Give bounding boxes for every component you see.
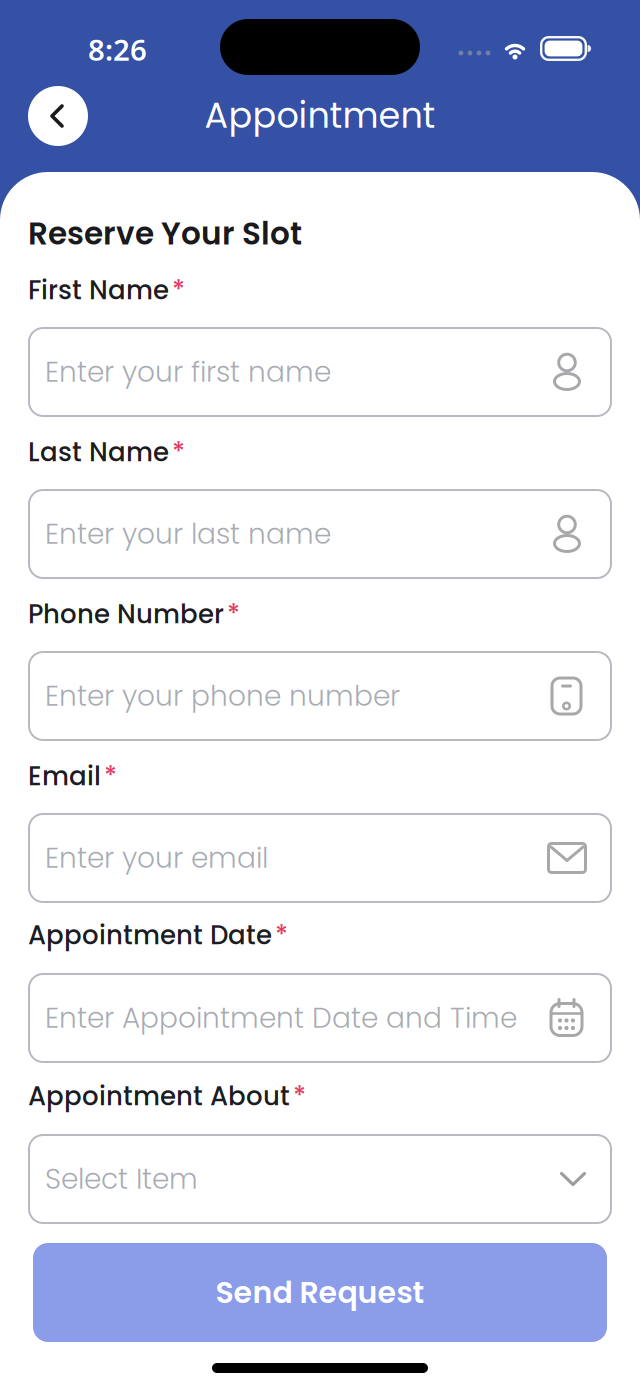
staticText: Appointment Date bbox=[28, 917, 272, 953]
button[interactable]: Enter your last name bbox=[28, 489, 612, 579]
button[interactable]: Back bbox=[28, 86, 88, 146]
button[interactable]: Enter Appointment Date and Time bbox=[28, 973, 612, 1063]
button[interactable]: Enter your first name bbox=[28, 327, 612, 417]
staticText: Enter your email bbox=[45, 838, 268, 878]
button[interactable]: Select Item bbox=[28, 1134, 612, 1224]
staticText: * bbox=[104, 758, 117, 794]
staticText: Phone Number bbox=[28, 596, 224, 632]
staticText: 8:26 bbox=[88, 30, 147, 69]
staticText: * bbox=[172, 272, 185, 308]
staticText: Enter Appointment Date and Time bbox=[45, 998, 517, 1038]
staticText: First Name bbox=[28, 272, 169, 308]
button[interactable]: Enter your email bbox=[28, 813, 612, 903]
staticText: Select Item bbox=[45, 1159, 198, 1199]
staticText: * bbox=[275, 917, 288, 953]
staticText: Send Request bbox=[215, 1271, 424, 1313]
staticText: * bbox=[293, 1078, 306, 1114]
staticText: Appointment About bbox=[28, 1078, 290, 1114]
staticText: Enter your last name bbox=[45, 514, 331, 554]
button[interactable]: Send Request bbox=[33, 1243, 607, 1342]
staticText: Enter your first name bbox=[45, 352, 331, 392]
staticText: * bbox=[172, 434, 185, 470]
staticText: Enter your phone number bbox=[45, 676, 400, 716]
staticText: * bbox=[227, 596, 240, 632]
button[interactable]: Enter your phone number bbox=[28, 651, 612, 741]
staticText: Appointment bbox=[204, 91, 435, 140]
staticText: Last Name bbox=[28, 434, 169, 470]
staticText: Reserve Your Slot bbox=[28, 212, 302, 255]
staticText: Email bbox=[28, 758, 101, 794]
